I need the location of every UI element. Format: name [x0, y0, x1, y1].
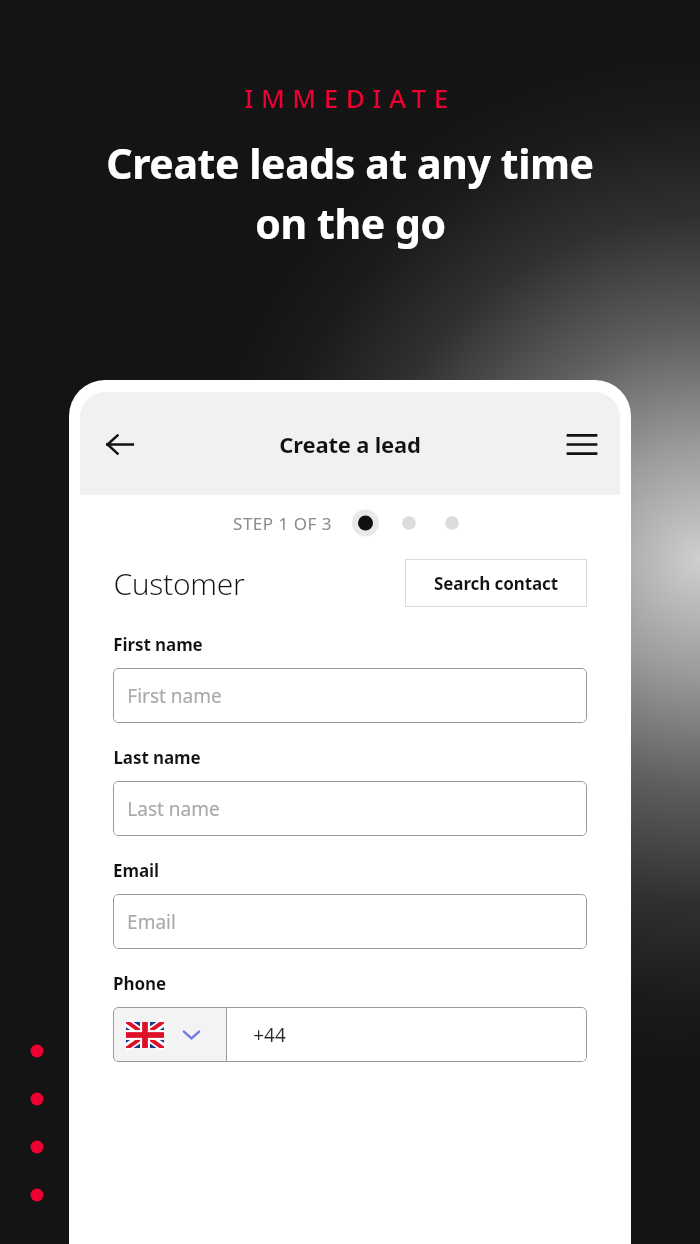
staticText: First name: [113, 633, 203, 656]
button[interactable]: Select country code: [113, 1007, 226, 1062]
button[interactable]: Last name: [113, 781, 587, 836]
button[interactable]: First name: [113, 668, 587, 723]
button[interactable]: +44: [227, 1007, 587, 1062]
staticText: Email: [127, 909, 176, 935]
staticText: STEP 1 OF 3: [233, 512, 332, 535]
staticText: IMMEDIATE: [244, 80, 456, 115]
staticText: Search contact: [434, 572, 558, 595]
staticText: Last name: [113, 746, 201, 769]
staticText: Email: [113, 859, 159, 882]
staticText: +44: [253, 1022, 286, 1048]
staticText: Phone: [113, 972, 166, 995]
staticText: Customer: [113, 563, 245, 604]
button[interactable]: Email: [113, 894, 587, 949]
button[interactable]: Back: [96, 421, 142, 467]
staticText: First name: [127, 683, 222, 709]
staticText: Last name: [127, 796, 220, 822]
staticText: on the go: [255, 195, 446, 251]
staticText: Create leads at any time: [106, 135, 594, 191]
button[interactable]: Menu: [559, 421, 605, 467]
staticText: Create a lead: [279, 429, 421, 459]
button[interactable]: Search contact: [405, 559, 587, 607]
